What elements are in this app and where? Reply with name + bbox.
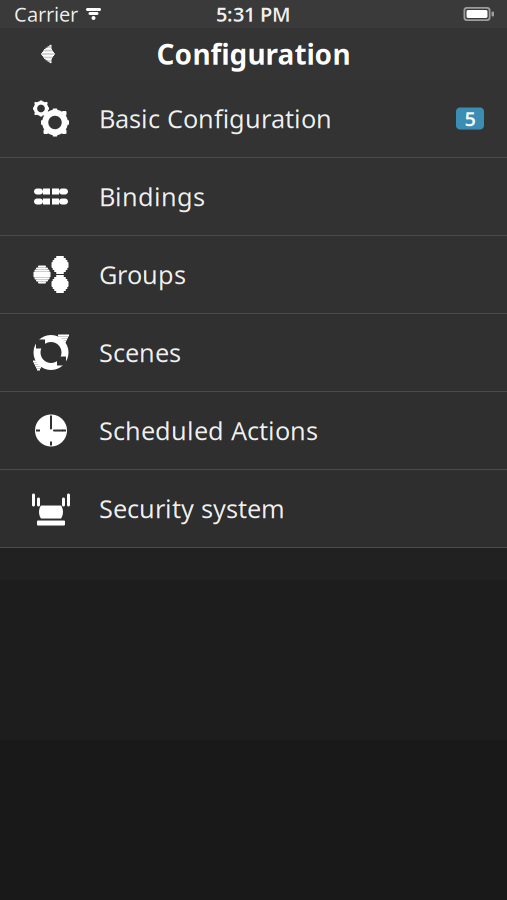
button[interactable]: Bindings bbox=[0, 158, 507, 235]
staticText: Groups bbox=[99, 258, 186, 291]
staticText: Carrier bbox=[14, 1, 78, 27]
staticText: Scenes bbox=[99, 336, 181, 369]
staticText: 5 bbox=[464, 105, 475, 132]
staticText: 5:31 PM bbox=[216, 1, 291, 27]
button[interactable]: Basic Configuration bbox=[0, 80, 507, 157]
button[interactable]: Groups bbox=[0, 236, 507, 313]
staticText: Configuration bbox=[156, 35, 350, 73]
button[interactable]: Scheduled Actions bbox=[0, 392, 507, 469]
staticText: Bindings bbox=[99, 180, 205, 213]
staticText: Basic Configuration bbox=[99, 102, 332, 135]
staticText: Scheduled Actions bbox=[99, 414, 318, 447]
staticText: Security system bbox=[99, 492, 285, 525]
button[interactable]: Scenes bbox=[0, 314, 507, 391]
button[interactable]: Back bbox=[22, 32, 66, 76]
button[interactable]: Security system bbox=[0, 470, 507, 547]
